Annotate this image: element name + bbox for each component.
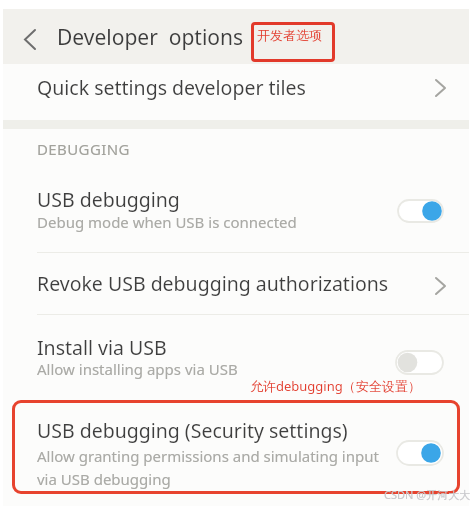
staticText: 开发者选项: [257, 27, 322, 43]
button[interactable]: [3, 175, 469, 252]
staticText: Allow granting permissions and simulatin…: [37, 446, 379, 489]
staticText: DEBUGGING: [37, 139, 130, 159]
staticText: Debug mode when USB is connected: [37, 212, 297, 232]
button[interactable]: [3, 253, 469, 314]
staticText: USB debugging: [37, 186, 180, 213]
button[interactable]: [395, 350, 444, 375]
staticText: Install via USB: [37, 334, 167, 361]
staticText: USB debugging (Security settings): [37, 417, 348, 444]
button[interactable]: [15, 403, 457, 491]
staticText: Revoke USB debugging authorizations: [37, 270, 389, 297]
staticText: Developer options: [57, 23, 244, 52]
staticText: Quick settings developer tiles: [37, 74, 306, 101]
staticText: CSDN @开河大大: [384, 487, 471, 502]
button[interactable]: [3, 64, 469, 120]
button[interactable]: [3, 315, 469, 390]
button[interactable]: [397, 199, 444, 223]
staticText: Allow installing apps via USB: [37, 359, 238, 379]
staticText: 允许debugging（安全设置）: [250, 377, 421, 395]
button[interactable]: [396, 440, 444, 466]
button[interactable]: [10, 15, 52, 59]
